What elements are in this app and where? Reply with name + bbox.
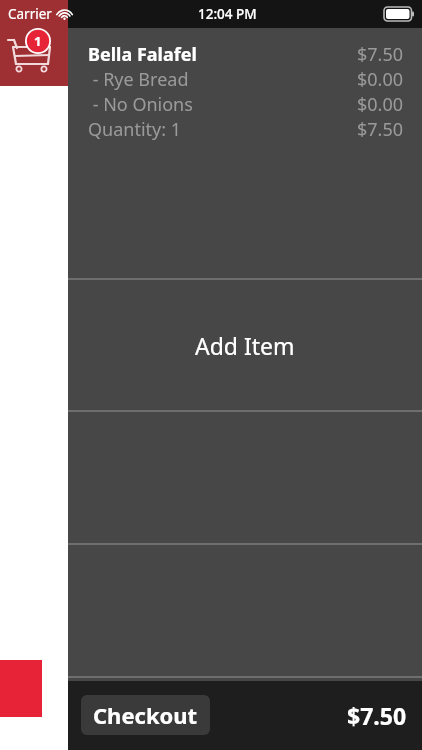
- staticText: $7.50: [357, 42, 404, 67]
- staticText: Add Item: [195, 330, 295, 361]
- staticText: - No Onions: [88, 92, 193, 117]
- staticText: 1: [34, 32, 42, 50]
- staticText: 12:04 PM: [198, 5, 257, 23]
- staticText: $0.00: [357, 67, 404, 92]
- button[interactable]: Checkout: [81, 695, 210, 735]
- staticText: Checkout: [93, 700, 198, 730]
- button[interactable]: Cart with 1 item: [0, 28, 68, 86]
- button[interactable]: Add Item: [68, 280, 422, 410]
- button[interactable]: Bella Falafel: [68, 28, 422, 278]
- staticText: $0.00: [357, 92, 404, 117]
- staticText: - Rye Bread: [88, 67, 189, 92]
- staticText: Carrier: [8, 5, 52, 23]
- staticText: Bella Falafel: [88, 42, 197, 67]
- staticText: $7.50: [347, 700, 407, 731]
- staticText: Quantity: 1: [88, 117, 182, 142]
- staticText: $7.50: [357, 117, 404, 142]
- button[interactable]: [68, 678, 422, 750]
